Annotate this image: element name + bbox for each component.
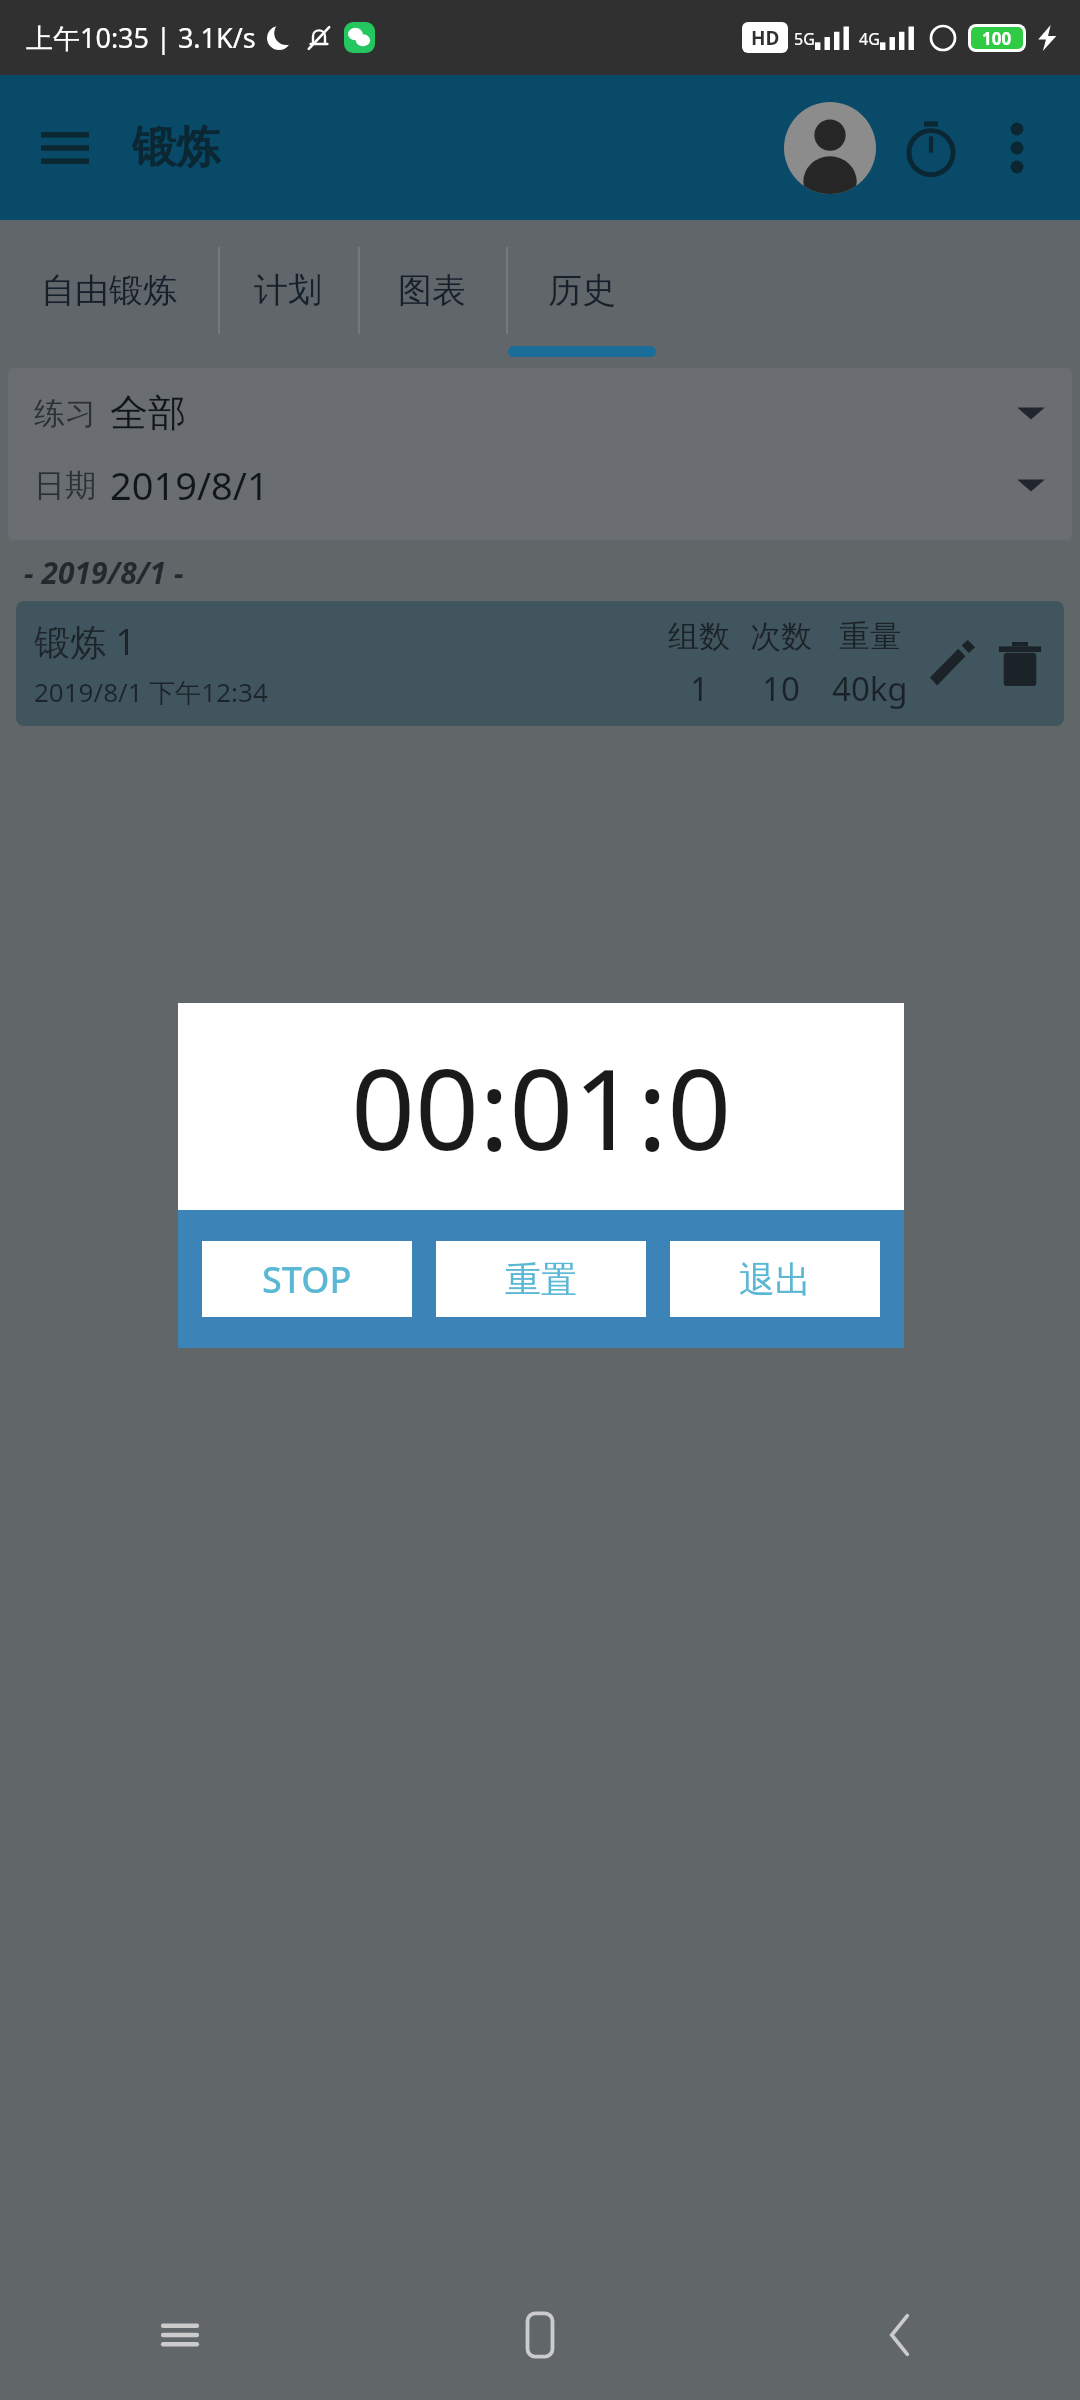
staticText: 5G [794,28,815,50]
staticText: 2019/8/1 [110,459,269,511]
staticText: 退出 [739,1257,811,1302]
button[interactable]: 图表 [358,220,506,360]
button[interactable]: 历史 [506,220,658,360]
staticText: 全部 [110,389,186,437]
staticText: STOP [262,1255,352,1304]
button[interactable]: 练习 [34,382,1046,444]
button[interactable]: Home [360,2270,720,2400]
staticText: 图表 [398,269,466,312]
staticText: 次数 [750,617,812,656]
staticText: 1 [690,666,709,711]
button[interactable]: Account [780,98,880,198]
button[interactable]: 计划 [218,220,358,360]
button[interactable]: STOP [202,1241,412,1317]
button[interactable]: More options [980,111,1054,185]
staticText: 00:01:0 [351,1030,732,1183]
staticText: 重置 [505,1257,577,1302]
button[interactable]: Timer [888,105,974,191]
button[interactable]: Menu [30,113,100,183]
button[interactable]: 日期 [34,454,1046,516]
staticText: 10 [762,666,800,711]
staticText: 上午10:35 | 3.1K/s [26,19,256,56]
staticText: 组数 [668,617,730,656]
button[interactable]: Edit [918,630,986,698]
staticText: 历史 [548,269,616,312]
staticText: 100 [982,27,1012,49]
staticText: 练习 [34,394,96,433]
staticText: HD [751,25,780,51]
button[interactable]: 退出 [670,1241,880,1317]
staticText: 锻炼 1 [34,617,136,666]
button[interactable]: 自由锻炼 [0,220,218,360]
button[interactable]: Recents [0,2270,360,2400]
staticText: 锻炼 [132,120,220,175]
staticText: 计划 [254,269,322,312]
button[interactable]: 锻炼 1 [16,601,1064,726]
staticText: - 2019/8/1 - [24,552,184,593]
button[interactable]: Delete [986,630,1054,698]
staticText: 4G [859,28,880,50]
staticText: 日期 [34,466,96,505]
staticText: 重量 [839,617,901,656]
staticText: 40kg [832,666,908,711]
staticText: 自由锻炼 [41,269,177,312]
button[interactable]: 重置 [436,1241,646,1317]
button[interactable]: Back [720,2270,1080,2400]
staticText: 2019/8/1 下午12:34 [34,674,268,710]
